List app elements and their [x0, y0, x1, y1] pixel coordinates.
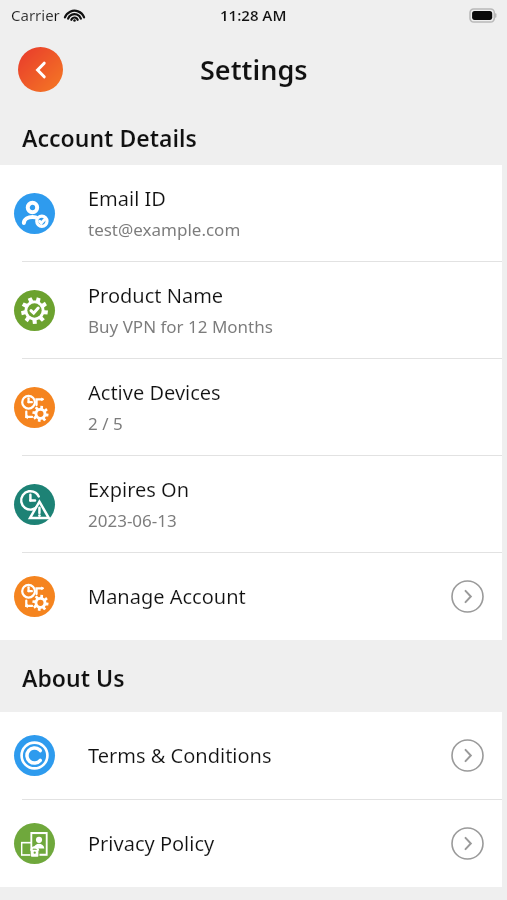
button[interactable]: Manage Account: [0, 553, 502, 640]
staticText: Product Name: [88, 282, 224, 309]
staticText: 2 / 5: [88, 412, 123, 435]
other: Terms & Conditions: [451, 739, 484, 772]
staticText: 11:28 AM: [220, 5, 287, 25]
staticText: Carrier: [11, 5, 60, 25]
button[interactable]: Back: [18, 47, 63, 92]
button[interactable]: Privacy Policy: [0, 800, 502, 887]
staticText: Buy VPN for 12 Months: [88, 315, 273, 338]
staticText: Privacy Policy: [88, 830, 215, 857]
button[interactable]: Expires On: [0, 456, 502, 552]
staticText: Account Details: [22, 122, 197, 153]
staticText: Expires On: [88, 476, 190, 503]
button[interactable]: Email ID: [0, 165, 502, 261]
button[interactable]: Active Devices: [0, 359, 502, 455]
staticText: test@example.com: [88, 218, 241, 241]
other: Manage Account: [451, 580, 484, 613]
other: Privacy Policy: [451, 827, 484, 860]
button[interactable]: Product Name: [0, 262, 502, 358]
staticText: About Us: [22, 662, 125, 693]
staticText: Active Devices: [88, 379, 221, 406]
staticText: Terms & Conditions: [88, 742, 272, 769]
staticText: Email ID: [88, 185, 166, 212]
staticText: 2023-06-13: [88, 509, 177, 532]
staticText: Manage Account: [88, 583, 246, 610]
button[interactable]: Terms & Conditions: [0, 712, 502, 799]
staticText: Settings: [200, 51, 308, 88]
